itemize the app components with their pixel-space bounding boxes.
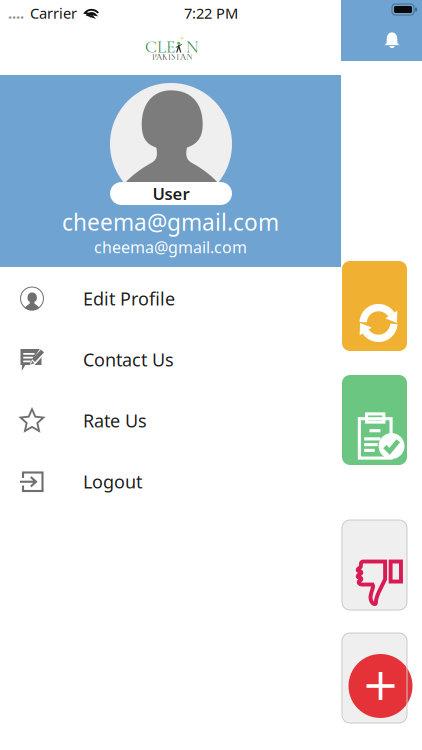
button[interactable]: Notifications [372,22,412,58]
staticText: User [152,182,189,205]
staticText: Rate Us [83,408,147,433]
button[interactable]: Contact Us [0,329,341,390]
button[interactable]: Edit Profile [0,268,341,329]
staticText: Carrier [30,3,77,23]
staticText: cheema@gmail.com [62,207,279,237]
staticText: 7:22 PM [184,3,238,23]
staticText: Contact Us [83,347,174,372]
staticText: CLE [145,36,175,57]
button[interactable]: Rate Us [0,390,341,451]
button[interactable]: Action [342,375,407,465]
staticText: Logout [83,469,142,494]
button[interactable]: Logout [0,451,341,512]
button[interactable]: Action [342,633,407,723]
staticText: cheema@gmail.com [94,236,247,258]
staticText: N [186,36,199,57]
staticText: Edit Profile [83,286,175,311]
button[interactable]: Action [342,261,407,351]
staticText: .... [8,3,24,23]
staticText: PAKISTAN [152,52,192,62]
button[interactable]: Action [342,520,407,610]
